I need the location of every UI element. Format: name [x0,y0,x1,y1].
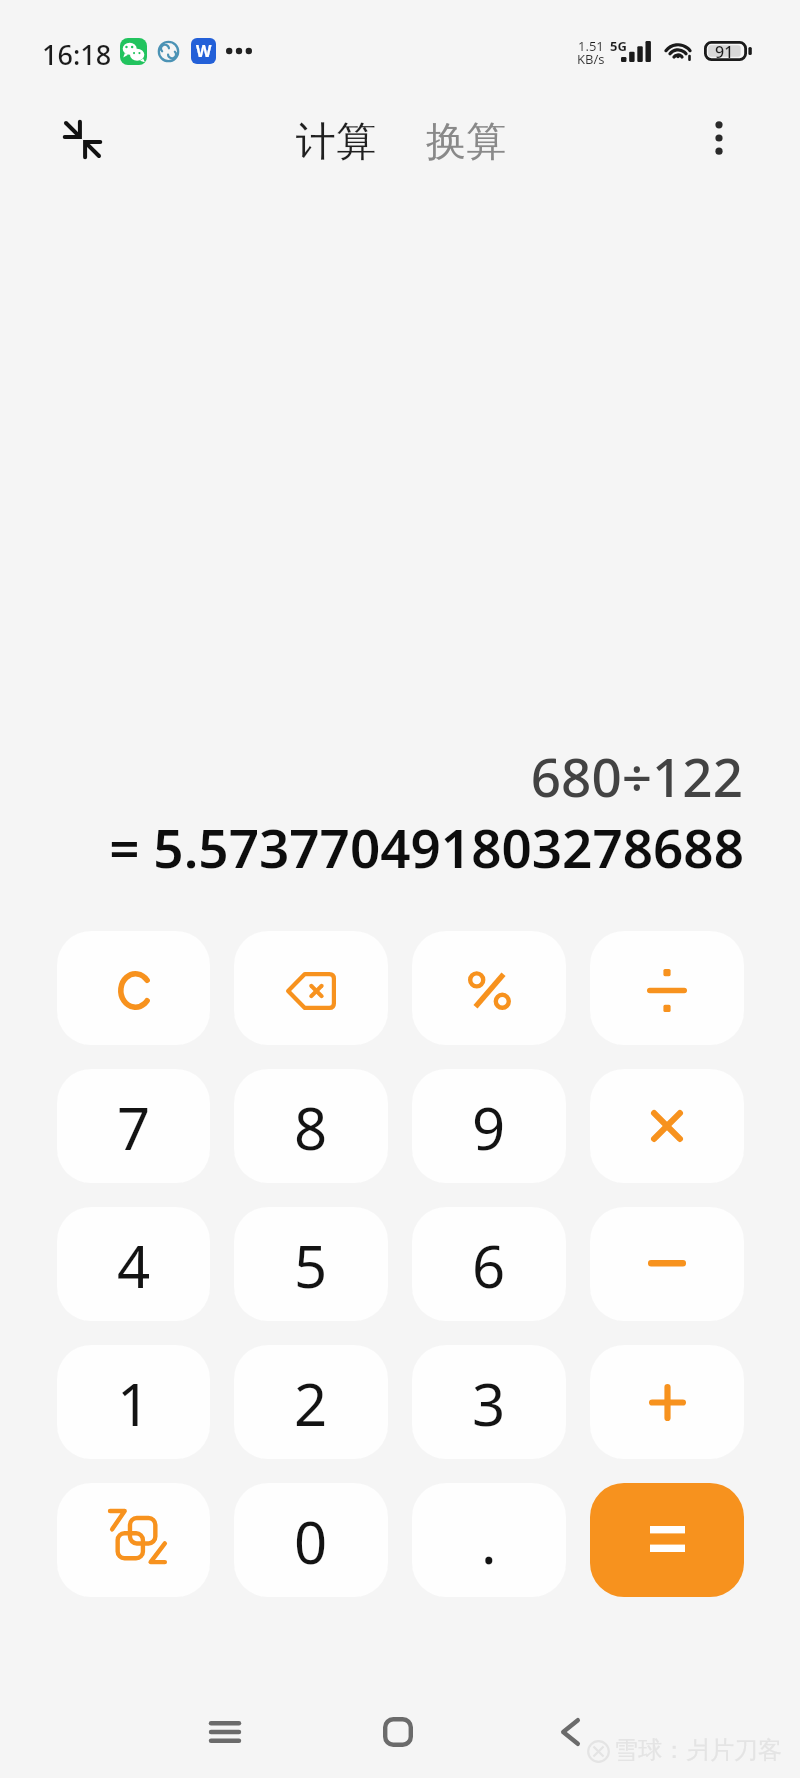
staticText: 0 [294,1502,328,1581]
button[interactable]: . [412,1483,566,1597]
staticText: 1 [117,1364,151,1443]
staticText: 5 [294,1226,328,1305]
staticText: 1.51 [578,37,604,55]
button[interactable]: 5 [234,1207,388,1321]
button[interactable]: 0 [234,1483,388,1597]
staticText: 5G [610,37,627,55]
button[interactable]: 1 [57,1345,210,1459]
staticText: 换算 [426,116,506,166]
staticText: 680÷122 [30,740,743,812]
staticText: = 5.573770491803278688 [30,811,744,883]
button[interactable]: Clear [57,931,210,1045]
button[interactable]: 4 [57,1207,210,1321]
staticText: W [196,40,212,62]
button[interactable]: More options [689,108,749,168]
button[interactable]: Divide [590,931,744,1045]
button[interactable]: 6 [412,1207,566,1321]
button[interactable]: Recents [170,1690,280,1774]
button[interactable]: 计算 [288,106,384,176]
button[interactable]: 2 [234,1345,388,1459]
button[interactable]: 9 [412,1069,566,1183]
staticText: 8 [294,1088,328,1167]
button[interactable]: Backspace [234,931,388,1045]
button[interactable]: Subtract [590,1207,744,1321]
button[interactable]: Scientific [57,1483,210,1597]
staticText: KB/s [577,50,605,68]
staticText: 2 [294,1364,328,1443]
button[interactable]: 3 [412,1345,566,1459]
button[interactable]: Back [515,1690,625,1774]
button[interactable] [590,1483,744,1597]
button[interactable]: 8 [234,1069,388,1183]
button[interactable]: Percent [412,931,566,1045]
button[interactable]: Collapse [52,109,112,169]
button[interactable]: 换算 [418,106,514,176]
button[interactable]: Home [343,1690,453,1774]
staticText: 4 [117,1226,151,1305]
staticText: 雪球：爿片刀客 [614,1735,782,1765]
staticText: . [481,1502,497,1581]
staticText: 计算 [296,116,376,166]
staticText: 7 [117,1088,151,1167]
staticText: 3 [472,1364,506,1443]
button[interactable]: Multiply [590,1069,744,1183]
staticText: 6 [472,1226,506,1305]
staticText: 16:18 [42,36,112,73]
button[interactable]: 7 [57,1069,210,1183]
staticText: 91 [715,41,734,61]
staticText: 9 [472,1088,506,1167]
button[interactable]: Add [590,1345,744,1459]
